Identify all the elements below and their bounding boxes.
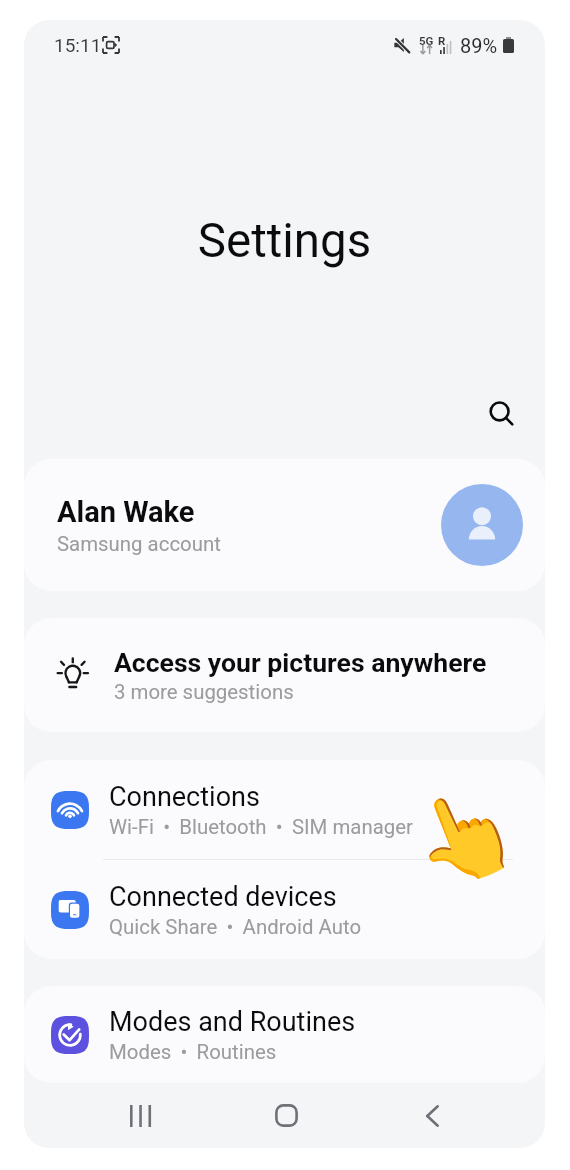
staticText: Modes • Routines <box>109 1040 277 1064</box>
staticText: Settings <box>24 213 545 269</box>
staticText: R <box>438 34 446 47</box>
button[interactable]: Connected devices <box>24 860 545 959</box>
staticText: 89% <box>460 34 498 57</box>
staticText: 👆 <box>396 771 532 903</box>
button[interactable]: Connections <box>24 760 545 859</box>
button[interactable]: Alan Wake <box>24 459 545 591</box>
staticText: Connections <box>109 781 260 813</box>
staticText: Wi-Fi • Bluetooth • SIM manager <box>109 815 413 839</box>
staticText: 15:11 <box>54 34 102 56</box>
button[interactable]: Back <box>384 1083 481 1148</box>
staticText: Quick Share • Android Auto <box>109 915 362 939</box>
button[interactable]: Recents <box>92 1083 189 1148</box>
button[interactable]: Home <box>238 1083 335 1148</box>
button[interactable]: Modes and Routines <box>24 986 545 1083</box>
staticText: Modes and Routines <box>109 1006 356 1038</box>
staticText: Connected devices <box>109 881 337 913</box>
button[interactable]: Search <box>478 390 526 438</box>
staticText: Alan Wake <box>57 495 195 529</box>
staticText: 3 more suggestions <box>114 680 294 704</box>
staticText: Samsung account <box>57 532 221 556</box>
staticText: Access your pictures anywhere <box>114 647 487 678</box>
button[interactable]: Access your pictures anywhere <box>24 618 545 732</box>
staticText: 5G <box>419 34 434 47</box>
